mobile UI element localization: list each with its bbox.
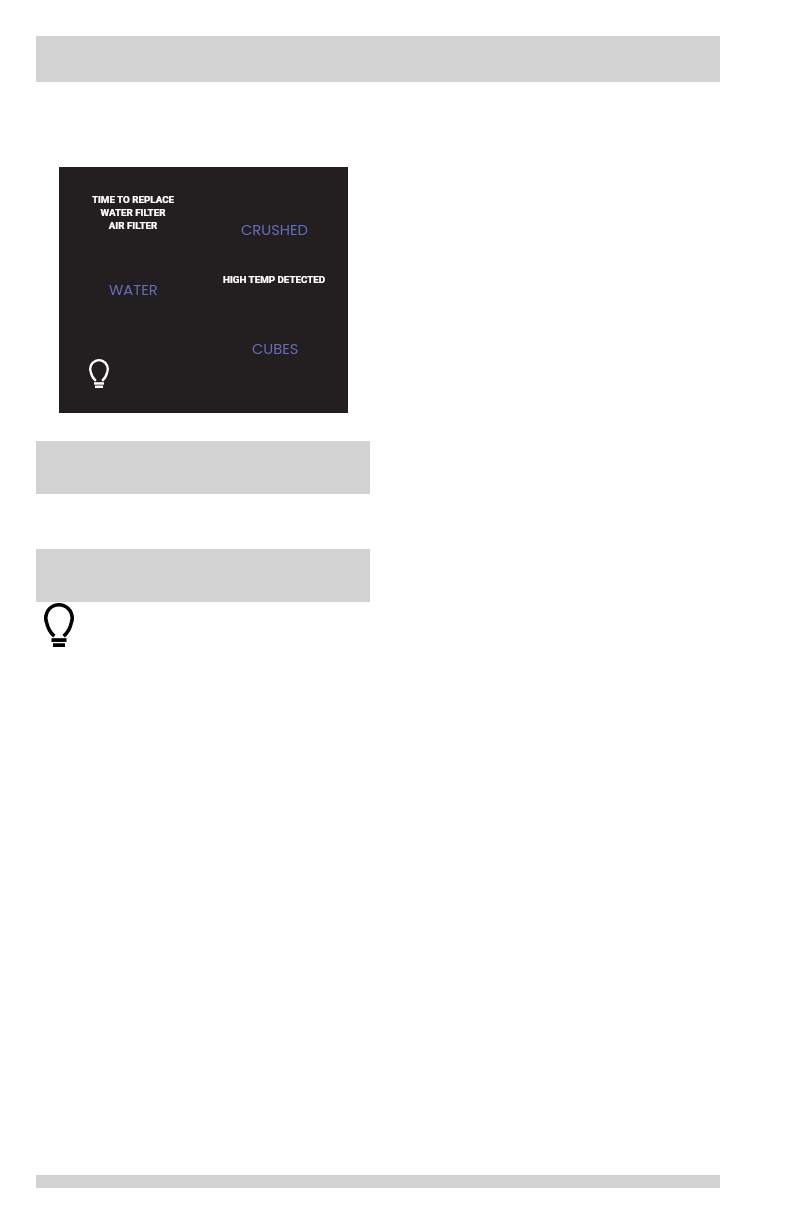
button[interactable]: Dispenser light xyxy=(44,603,74,647)
staticText: TIME TO REPLACE WATER FILTER AIR FILTER xyxy=(73,194,193,231)
staticText: CRUSHED xyxy=(241,220,308,241)
staticText: WATER xyxy=(109,280,158,301)
button[interactable]: Dispenser light xyxy=(89,359,109,388)
button[interactable]: TIME TO REPLACE WATER FILTER AIR FILTER xyxy=(59,167,348,413)
staticText: HIGH TEMP DETECTED xyxy=(223,274,326,285)
staticText: CUBES xyxy=(252,339,299,360)
